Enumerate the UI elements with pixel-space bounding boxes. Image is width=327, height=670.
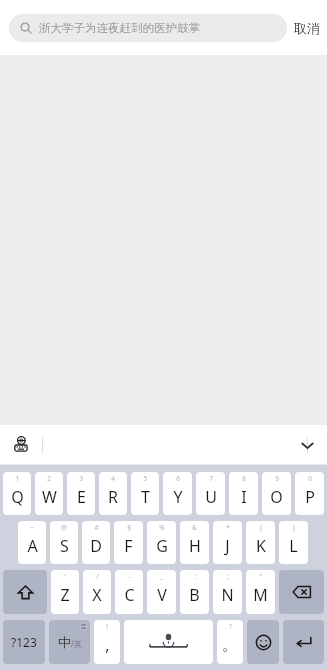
button[interactable]: ?123: [3, 620, 45, 664]
staticText: D: [90, 535, 102, 557]
staticText: 浙大学子为连夜赶到的医护鼓掌: [39, 21, 200, 35]
button[interactable]: 1: [3, 472, 31, 515]
button[interactable]: 8: [229, 472, 258, 515]
button[interactable]: (: [246, 521, 275, 564]
staticText: L: [289, 535, 298, 557]
staticText: ': [64, 572, 66, 581]
staticText: O: [270, 486, 283, 508]
staticText: /: [96, 572, 99, 581]
staticText: ?: [229, 622, 232, 631]
button[interactable]: 0: [295, 472, 324, 515]
staticText: 8: [242, 474, 246, 483]
button[interactable]: 浙大学子为连夜赶到的医护鼓掌: [9, 14, 287, 42]
button[interactable]: 9: [262, 472, 291, 515]
button[interactable]: $: [114, 521, 143, 564]
button[interactable]: Hide keyboard: [295, 433, 319, 457]
staticText: ): [293, 523, 295, 532]
staticText: 0: [308, 474, 312, 483]
staticText: Y: [173, 486, 183, 508]
staticText: 中: [58, 634, 71, 650]
button[interactable]: Space: [124, 620, 213, 664]
staticText: N: [221, 584, 234, 606]
staticText: U: [205, 486, 217, 508]
staticText: ": [259, 572, 262, 581]
staticText: 5: [143, 474, 147, 483]
staticText: E: [77, 486, 86, 508]
staticText: V: [157, 584, 167, 606]
button[interactable]: Backspace: [279, 570, 324, 614]
button[interactable]: 3: [67, 472, 95, 515]
staticText: F: [124, 535, 133, 557]
staticText: $: [127, 523, 131, 532]
staticText: 6: [176, 474, 180, 483]
button[interactable]: ~: [18, 521, 46, 564]
staticText: 2: [47, 474, 51, 483]
button[interactable]: Shift: [3, 570, 47, 614]
button[interactable]: &: [180, 521, 209, 564]
staticText: I: [241, 486, 247, 508]
staticText: H: [189, 535, 201, 557]
button[interactable]: 取消: [294, 20, 320, 36]
button[interactable]: Chinese English toggle: [49, 620, 90, 664]
staticText: *: [226, 523, 230, 532]
button[interactable]: Enter: [283, 620, 324, 664]
staticText: 3: [79, 474, 83, 483]
staticText: 取消: [294, 20, 320, 36]
button[interactable]: 2: [35, 472, 63, 515]
staticText: W: [42, 486, 57, 508]
staticText: %: [159, 523, 165, 532]
button[interactable]: ': [51, 570, 79, 614]
button[interactable]: ;: [213, 570, 242, 614]
button[interactable]: Switch keyboard language: [10, 434, 32, 456]
button[interactable]: *: [213, 521, 242, 564]
button[interactable]: %: [147, 521, 176, 564]
staticText: Q: [11, 486, 24, 508]
button[interactable]: ": [246, 570, 275, 614]
staticText: J: [225, 535, 230, 557]
staticText: @: [61, 523, 67, 532]
staticText: G: [156, 535, 168, 557]
button[interactable]: -: [115, 570, 143, 614]
staticText: -: [128, 572, 131, 581]
staticText: C: [124, 584, 135, 606]
staticText: !: [106, 622, 108, 631]
staticText: 7: [209, 474, 213, 483]
staticText: ?123: [11, 634, 37, 650]
button[interactable]: 4: [99, 472, 127, 515]
button[interactable]: !: [94, 620, 120, 664]
button[interactable]: :: [180, 570, 209, 614]
staticText: M: [253, 584, 268, 606]
staticText: 9: [275, 474, 279, 483]
button[interactable]: Emoji: [247, 620, 279, 664]
staticText: ~: [30, 523, 34, 532]
button[interactable]: 6: [163, 472, 192, 515]
button[interactable]: ): [279, 521, 308, 564]
staticText: ;: [227, 572, 229, 581]
staticText: 4: [111, 474, 115, 483]
staticText: :: [194, 572, 196, 581]
staticText: X: [92, 584, 102, 606]
staticText: P: [305, 486, 315, 508]
staticText: Z: [60, 584, 70, 606]
button[interactable]: _: [147, 570, 176, 614]
button[interactable]: @: [50, 521, 78, 564]
button[interactable]: 5: [131, 472, 159, 515]
button[interactable]: #: [82, 521, 110, 564]
staticText: &: [192, 523, 197, 532]
button[interactable]: /: [83, 570, 111, 614]
staticText: B: [189, 584, 200, 606]
staticText: 。: [222, 635, 238, 655]
staticText: ,: [105, 634, 110, 656]
button[interactable]: 7: [196, 472, 225, 515]
staticText: R: [108, 486, 118, 508]
staticText: K: [256, 535, 266, 557]
button[interactable]: ?: [217, 620, 243, 664]
staticText: (: [260, 523, 262, 532]
staticText: T: [141, 486, 150, 508]
staticText: S: [60, 535, 69, 557]
staticText: 1: [15, 474, 19, 483]
staticText: #: [94, 523, 99, 532]
staticText: A: [27, 535, 38, 557]
staticText: _: [160, 572, 163, 581]
staticText: /英: [71, 638, 82, 649]
